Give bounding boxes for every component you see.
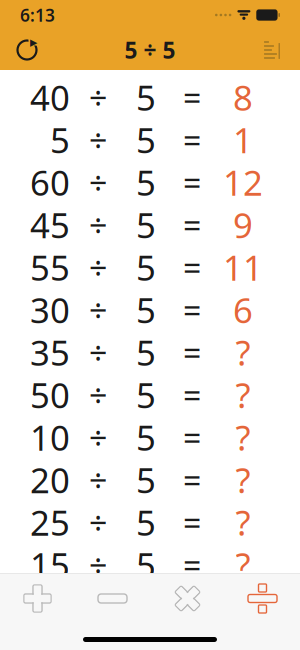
button[interactable]: Statistics (240, 34, 300, 66)
staticText: = (183, 203, 201, 246)
staticText: 5 (136, 372, 156, 418)
button[interactable]: 50 (0, 373, 300, 416)
button[interactable]: 25 (0, 501, 300, 543)
button[interactable]: 5 (0, 118, 300, 161)
staticText: ? (235, 414, 250, 460)
staticText: ? (235, 372, 250, 418)
staticText: 40 (30, 74, 70, 120)
staticText: 15 (30, 542, 70, 588)
staticText: = (183, 76, 201, 118)
staticText: 20 (30, 457, 70, 503)
staticText: 6:13 (20, 3, 55, 26)
staticText: ? (235, 329, 250, 375)
staticText: ÷ (89, 161, 107, 203)
staticText: 50 (30, 372, 70, 418)
staticText: 5 (136, 74, 156, 120)
staticText: 5 (136, 202, 156, 248)
staticText: 5 (50, 117, 70, 163)
button[interactable]: 60 (0, 161, 300, 203)
staticText: ÷ (89, 246, 107, 288)
staticText: 1 (233, 117, 253, 163)
staticText: 5 (136, 159, 156, 205)
staticText: 5 (136, 329, 156, 375)
button[interactable]: 15 (0, 543, 300, 586)
staticText: 11 (223, 244, 263, 290)
button[interactable]: 55 (0, 246, 300, 288)
staticText: ? (235, 542, 250, 588)
staticText: ? (235, 457, 250, 503)
staticText: ◗ (243, 14, 244, 16)
staticText: = (183, 331, 201, 373)
staticText: = (183, 458, 201, 501)
staticText: = (183, 161, 201, 203)
button[interactable]: Addition (0, 576, 75, 620)
staticText: = (183, 288, 201, 331)
staticText: ÷ (89, 331, 107, 373)
staticText: 55 (30, 244, 70, 290)
button[interactable]: 30 (0, 288, 300, 331)
staticText: ▸ (30, 34, 37, 50)
staticText: = (183, 501, 201, 543)
staticText: ÷ (89, 76, 107, 118)
staticText: 8 (233, 74, 253, 120)
button[interactable]: 35 (0, 331, 300, 373)
staticText: 5 (136, 414, 156, 460)
button[interactable]: 20 (0, 458, 300, 501)
button[interactable]: 40 (0, 76, 300, 118)
staticText: ? (235, 499, 250, 545)
staticText: 5 (136, 287, 156, 333)
staticText: ÷ (89, 416, 107, 458)
staticText: 5 ÷ 5 (124, 35, 175, 65)
staticText: ÷ (89, 458, 107, 501)
button[interactable]: Reload (0, 31, 60, 69)
staticText: 60 (30, 159, 70, 205)
button[interactable]: Subtraction (75, 576, 150, 620)
staticText: 6 (233, 287, 253, 333)
staticText: ÷ (89, 288, 107, 331)
staticText: 35 (30, 329, 70, 375)
staticText: = (183, 416, 201, 458)
staticText: ÷ (89, 118, 107, 161)
staticText: 12 (223, 159, 263, 205)
staticText: 5 (136, 117, 156, 163)
staticText: = (183, 246, 201, 288)
staticText: ÷ (89, 543, 107, 586)
button[interactable]: Multiplication (150, 576, 225, 620)
staticText: = (183, 373, 201, 416)
staticText: = (183, 543, 201, 586)
staticText: 10 (30, 414, 70, 460)
staticText: 25 (30, 499, 70, 545)
staticText: 30 (30, 287, 70, 333)
staticText: ÷ (89, 203, 107, 246)
staticText: ÷ (89, 501, 107, 543)
button[interactable]: Division (225, 576, 300, 620)
staticText: 45 (30, 202, 70, 248)
button[interactable]: 45 (0, 203, 300, 246)
staticText: ÷ (89, 373, 107, 416)
button[interactable]: 10 (0, 416, 300, 458)
staticText: 5 (136, 244, 156, 290)
staticText: 5 (136, 499, 156, 545)
staticText: 5 (136, 457, 156, 503)
staticText: = (183, 118, 201, 161)
staticText: 9 (233, 202, 253, 248)
staticText: 5 (136, 542, 156, 588)
